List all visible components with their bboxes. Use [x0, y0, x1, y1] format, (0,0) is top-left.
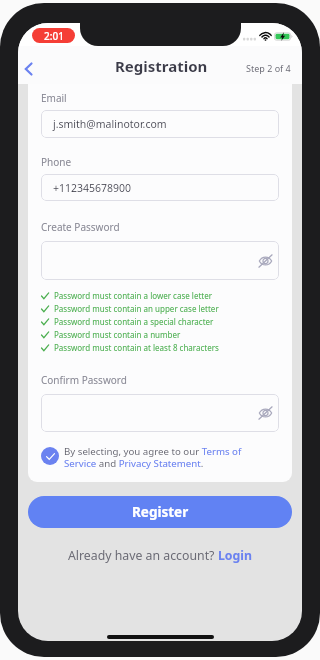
staticText: +112345678900: [53, 181, 132, 195]
staticText: Password must contain a lower case lette…: [54, 290, 212, 301]
button[interactable]: Show password: [255, 403, 275, 423]
staticText: Already have an account?: [68, 547, 218, 564]
staticText: Password must contain at least 8 charact…: [54, 342, 219, 353]
button[interactable]: Show password: [41, 394, 279, 432]
button[interactable]: Back: [18, 53, 45, 85]
button[interactable]: By selecting, you agree to our Terms of …: [41, 445, 279, 470]
staticText: Registration: [115, 56, 208, 76]
staticText: Register: [132, 503, 189, 521]
button[interactable]: Show password: [255, 251, 275, 271]
staticText: j.smith@malinotor.com: [53, 117, 167, 131]
staticText: Create Password: [41, 220, 120, 234]
button[interactable]: Login: [218, 547, 253, 564]
staticText: Email: [41, 91, 67, 105]
button[interactable]: j.smith@malinotor.com: [41, 110, 279, 138]
staticText: 2:01: [44, 29, 64, 43]
staticText: Login: [218, 547, 253, 564]
staticText: Step 2 of 4: [246, 62, 291, 74]
button[interactable]: +112345678900: [41, 174, 279, 201]
staticText: Phone: [41, 155, 72, 169]
staticText: By selecting, you agree to our Terms of …: [64, 445, 270, 470]
button[interactable]: Show password: [41, 241, 279, 280]
button[interactable]: Register: [28, 496, 292, 528]
staticText: Password must contain a number: [54, 329, 181, 340]
staticText: Password must contain a special characte…: [54, 316, 214, 327]
staticText: Password must contain an upper case lett…: [54, 303, 219, 314]
staticText: Confirm Password: [41, 373, 127, 387]
